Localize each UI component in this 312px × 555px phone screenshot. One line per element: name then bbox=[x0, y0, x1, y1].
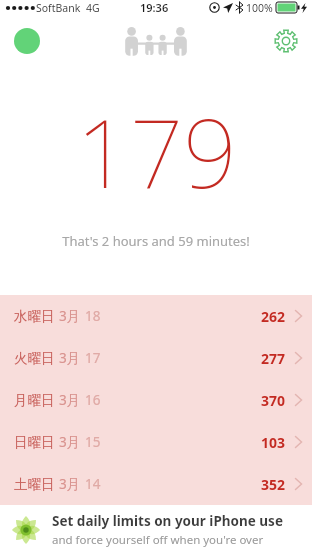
staticText: 277 bbox=[261, 349, 286, 368]
staticText: 17 bbox=[85, 349, 101, 367]
button[interactable]: Family bbox=[119, 21, 193, 61]
staticText: 日曜日 bbox=[14, 434, 55, 451]
staticText: 3月 bbox=[59, 391, 81, 409]
staticText: 3月 bbox=[59, 307, 81, 325]
staticText: 3月 bbox=[59, 349, 81, 367]
button[interactable]: 月曜日 bbox=[0, 379, 312, 421]
staticText: 14 bbox=[85, 475, 101, 493]
staticText: SoftBank bbox=[36, 1, 81, 15]
staticText: 水曜日 bbox=[14, 308, 55, 325]
staticText: That's 2 hours and 59 minutes! bbox=[62, 232, 250, 250]
staticText: 火曜日 bbox=[14, 350, 55, 367]
staticText: 100% bbox=[246, 1, 273, 15]
staticText: 262 bbox=[261, 307, 286, 326]
staticText: 103 bbox=[261, 433, 286, 452]
staticText: 15 bbox=[85, 433, 101, 451]
button[interactable]: Settings bbox=[268, 23, 304, 59]
staticText: 18 bbox=[85, 307, 101, 325]
staticText: 土曜日 bbox=[14, 476, 55, 493]
staticText: 4G bbox=[86, 1, 100, 15]
staticText: 3月 bbox=[59, 475, 81, 493]
button[interactable]: Set daily limits on your iPhone use bbox=[0, 505, 312, 555]
staticText: and force yourself off when you're over bbox=[52, 532, 264, 548]
button[interactable]: Profile bbox=[10, 24, 44, 58]
staticText: Set daily limits on your iPhone use bbox=[52, 512, 283, 530]
staticText: 19:36 bbox=[140, 0, 169, 15]
button[interactable]: 火曜日 bbox=[0, 337, 312, 379]
staticText: 352 bbox=[261, 475, 286, 494]
button[interactable]: 土曜日 bbox=[0, 463, 312, 505]
staticText: 月曜日 bbox=[14, 392, 55, 409]
staticText: 3月 bbox=[59, 433, 81, 451]
button[interactable]: 水曜日 bbox=[0, 295, 312, 337]
button[interactable]: 日曜日 bbox=[0, 421, 312, 463]
staticText: 16 bbox=[85, 391, 101, 409]
staticText: 179 bbox=[76, 88, 237, 216]
staticText: 370 bbox=[261, 391, 286, 410]
